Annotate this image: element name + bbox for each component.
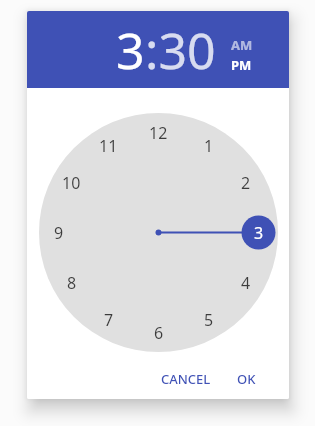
button[interactable]: 3	[254, 222, 264, 244]
staticText: 12	[149, 122, 168, 144]
staticText: AM	[231, 36, 253, 54]
staticText: 3	[254, 222, 264, 244]
staticText: 5	[204, 309, 214, 331]
button[interactable]: 8	[67, 272, 77, 294]
staticText: CANCEL	[161, 370, 211, 388]
staticText: OK	[237, 370, 256, 388]
button[interactable]: OK	[221, 361, 272, 397]
staticText: 3	[116, 16, 145, 84]
staticText: 1	[204, 135, 214, 157]
button[interactable]: CANCEL	[145, 361, 221, 397]
staticText: 10	[62, 172, 81, 194]
button[interactable]: 1	[204, 135, 214, 157]
staticText: :30	[145, 16, 216, 84]
button[interactable]: 4	[241, 272, 251, 294]
staticText: 2	[241, 172, 251, 194]
button[interactable]: 2	[241, 172, 251, 194]
button[interactable]: 10	[62, 172, 81, 194]
button[interactable]: AM	[231, 36, 253, 54]
button[interactable]: 7	[104, 309, 114, 331]
button[interactable]: 9	[54, 222, 64, 244]
staticText: 8	[67, 272, 77, 294]
staticText: PM	[231, 56, 252, 74]
staticText: 9	[54, 222, 64, 244]
button[interactable]: :30	[145, 16, 216, 84]
staticText: 6	[154, 322, 164, 344]
button[interactable]: 11	[99, 135, 118, 157]
button[interactable]: 12	[149, 122, 168, 144]
staticText: 7	[104, 309, 114, 331]
button[interactable]: PM	[231, 56, 252, 74]
staticText: 11	[99, 135, 118, 157]
button[interactable]: 3	[116, 16, 145, 84]
staticText: 4	[241, 272, 251, 294]
button[interactable]: 6	[154, 322, 164, 344]
button[interactable]: 5	[204, 309, 214, 331]
